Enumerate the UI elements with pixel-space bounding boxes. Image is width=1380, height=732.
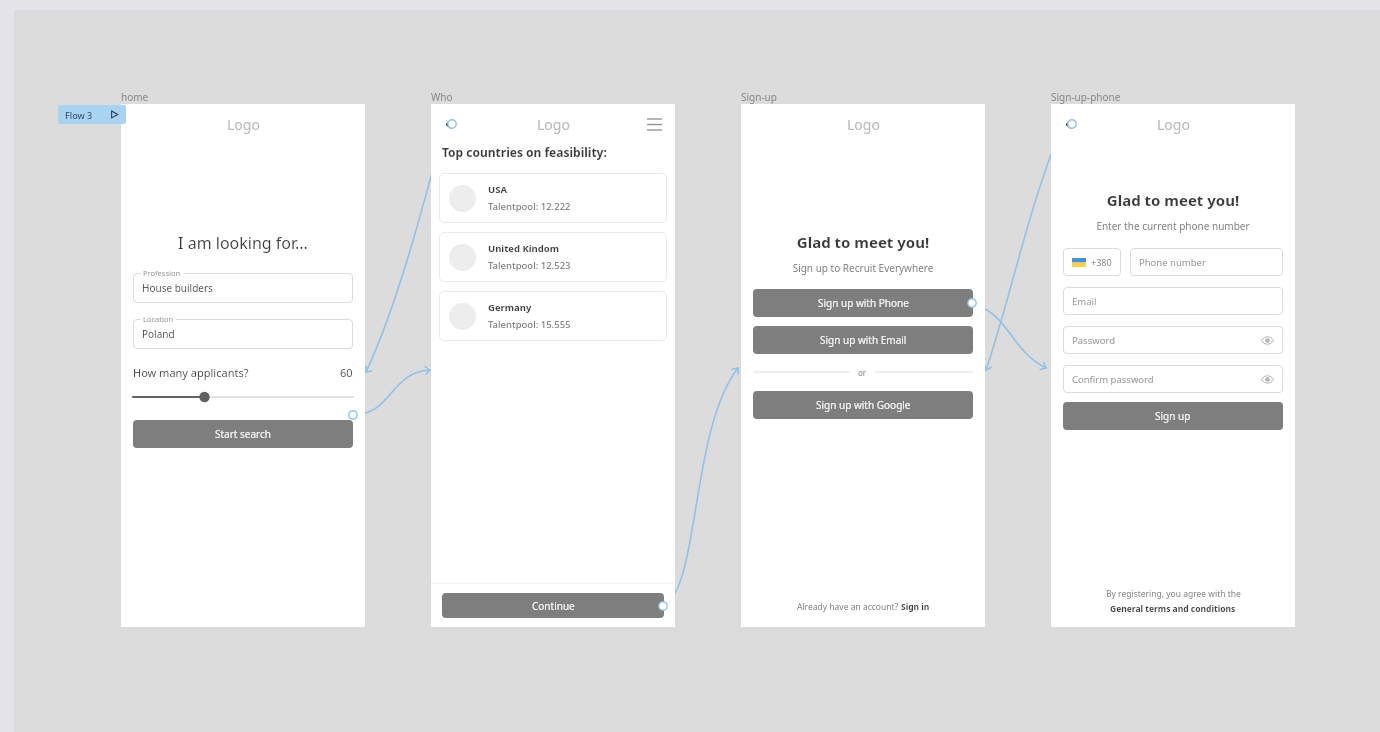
staticText: Logo: [537, 115, 570, 134]
staticText: General terms and conditions: [1110, 603, 1236, 615]
staticText: +380: [1091, 256, 1112, 268]
button[interactable]: Confirm password: [1063, 365, 1283, 393]
button[interactable]: USA: [439, 173, 667, 223]
staticText: Sign up with Google: [816, 398, 911, 412]
button[interactable]: Phone number: [1130, 248, 1283, 276]
staticText: Profession: [143, 268, 181, 278]
button[interactable]: Back: [439, 113, 461, 135]
button[interactable]: Password: [1063, 326, 1283, 354]
staticText: Sign up with Email: [820, 333, 907, 347]
staticText: Location: [143, 314, 174, 324]
staticText: Sign up with Phone: [818, 296, 909, 310]
staticText: United Kindom: [488, 242, 559, 255]
staticText: Germany: [488, 301, 532, 314]
staticText: USA: [488, 183, 507, 196]
button[interactable]: Flow 3: [58, 105, 126, 124]
staticText: Sign up: [1155, 409, 1191, 423]
button[interactable]: Menu: [643, 113, 665, 135]
staticText: Start search: [215, 427, 271, 441]
button[interactable]: Already have an account?: [741, 601, 985, 627]
button[interactable]: Show password: [1260, 372, 1274, 386]
staticText: Sign in: [901, 601, 930, 613]
staticText: Logo: [227, 115, 260, 134]
button[interactable]: Poland: [133, 319, 353, 349]
staticText: House builders: [142, 281, 213, 295]
staticText: Talentpool: 12.222: [488, 200, 571, 213]
button[interactable]: Sign up: [1063, 402, 1283, 430]
staticText: Sign up to Recruit Everywhere: [741, 261, 985, 275]
staticText: home: [121, 90, 149, 104]
staticText: Poland: [142, 327, 175, 341]
staticText: Sign-up-phone: [1051, 90, 1121, 104]
staticText: Password: [1072, 334, 1115, 347]
staticText: Already have an account?: [797, 601, 901, 613]
staticText: Talentpool: 15.555: [488, 318, 571, 331]
staticText: Logo: [847, 115, 880, 134]
staticText: Talentpool: 12.523: [488, 259, 571, 272]
button[interactable]: Show password: [1260, 333, 1274, 347]
staticText: Phone number: [1139, 256, 1206, 269]
button[interactable]: Back: [1059, 113, 1081, 135]
staticText: By registering, you agree with the: [1106, 588, 1241, 600]
staticText: Sign-up: [741, 90, 777, 104]
button[interactable]: House builders: [133, 273, 353, 303]
staticText: Flow 3: [65, 109, 93, 121]
button[interactable]: [133, 390, 353, 404]
button[interactable]: Start search: [133, 420, 353, 448]
staticText: How many applicants?: [133, 365, 249, 380]
staticText: 60: [340, 365, 353, 380]
button[interactable]: Sign up with Phone: [753, 289, 973, 317]
staticText: or: [858, 367, 867, 378]
staticText: Continue: [532, 599, 575, 613]
button[interactable]: United Kindom: [439, 232, 667, 282]
button[interactable]: Email: [1063, 287, 1283, 315]
button[interactable]: Continue: [442, 593, 664, 618]
staticText: Confirm password: [1072, 373, 1154, 386]
button[interactable]: +380: [1063, 248, 1121, 276]
staticText: Email: [1072, 295, 1097, 308]
staticText: Glad to meet you!: [1051, 190, 1295, 210]
staticText: Logo: [1157, 115, 1190, 134]
staticText: Glad to meet you!: [741, 232, 985, 252]
button[interactable]: Sign up with Google: [753, 391, 973, 419]
button[interactable]: Sign up with Email: [753, 326, 973, 354]
staticText: Enter the current phone number: [1051, 219, 1295, 233]
staticText: Top countries on feasibility:: [442, 144, 607, 160]
staticText: I am looking for...: [121, 232, 365, 254]
staticText: Who: [431, 90, 453, 104]
button[interactable]: By registering, you agree with the: [1051, 588, 1295, 627]
button[interactable]: Germany: [439, 291, 667, 341]
